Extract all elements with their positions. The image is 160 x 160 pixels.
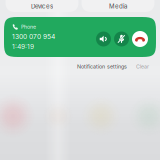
staticText: Devices bbox=[31, 3, 53, 10]
staticText: Clear bbox=[136, 63, 149, 70]
button[interactable]: Clear bbox=[136, 63, 149, 70]
staticText: Media bbox=[109, 3, 127, 10]
button[interactable]: Mute bbox=[114, 31, 129, 46]
button[interactable]: Media bbox=[81, 0, 154, 12]
button[interactable]: Speaker bbox=[96, 31, 111, 46]
staticText: 1300 070 954 bbox=[12, 32, 55, 40]
button[interactable]: Notification settings bbox=[77, 63, 127, 70]
button[interactable]: Devices bbox=[5, 0, 78, 12]
staticText: Phone bbox=[21, 24, 36, 30]
button[interactable]: End call bbox=[132, 31, 148, 47]
staticText: Notification settings bbox=[77, 63, 127, 70]
staticText: 1:49:19 bbox=[12, 42, 34, 51]
